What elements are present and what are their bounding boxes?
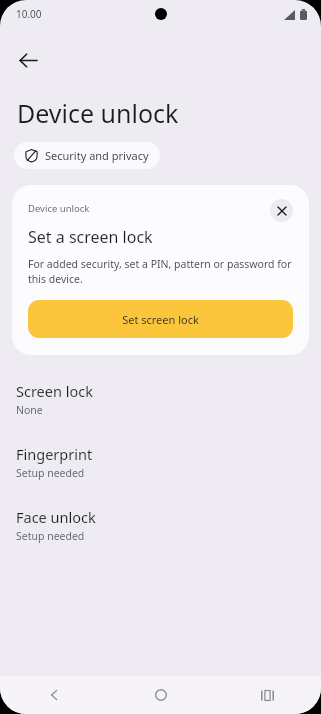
staticText: Device unlock [17, 96, 179, 130]
staticText: Set screen lock [122, 312, 199, 327]
staticText: Setup needed [16, 466, 85, 480]
staticText: None [16, 403, 43, 417]
staticText: Security and privacy [45, 148, 149, 163]
button[interactable]: Back [0, 676, 107, 714]
button[interactable]: Set screen lock [28, 300, 293, 338]
button[interactable]: Screen lock [0, 379, 321, 419]
staticText: Setup needed [16, 529, 85, 543]
button[interactable]: Dismiss [270, 199, 293, 222]
staticText: Fingerprint [16, 444, 93, 464]
staticText: Device unlock [28, 202, 270, 215]
staticText: Face unlock [16, 507, 96, 527]
button[interactable]: Face unlock [0, 505, 321, 545]
staticText: Set a screen lock [28, 226, 153, 248]
button[interactable]: Home [107, 676, 214, 714]
button[interactable]: Fingerprint [0, 442, 321, 482]
button[interactable]: Recent apps [214, 676, 321, 714]
button[interactable]: Back [6, 38, 50, 82]
staticText: 10.00 [16, 7, 42, 21]
button[interactable]: Security and privacy [14, 142, 160, 169]
staticText: For added security, set a PIN, pattern o… [28, 257, 293, 286]
staticText: Screen lock [16, 381, 93, 401]
